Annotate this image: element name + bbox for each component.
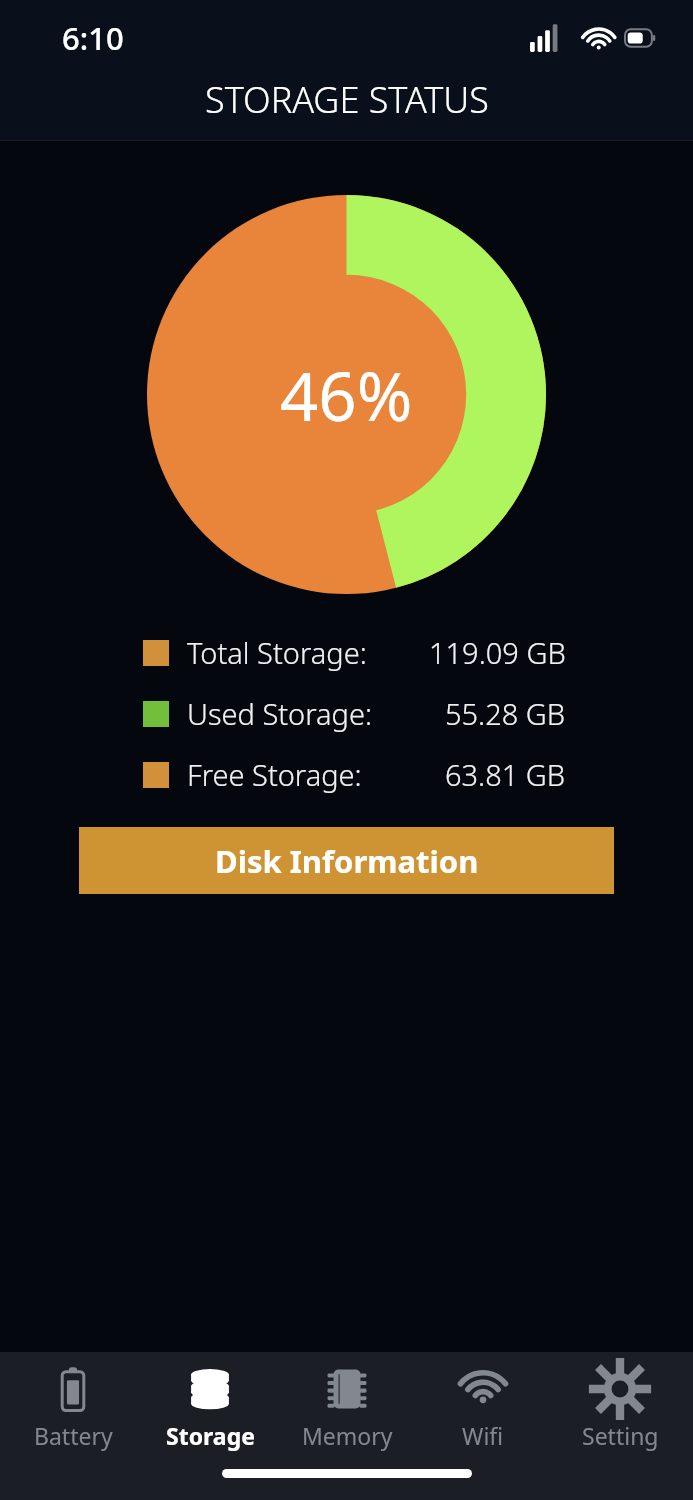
button[interactable]: Battery [9, 1358, 137, 1455]
staticText: Storage [166, 1420, 255, 1451]
button[interactable]: Setting [556, 1358, 684, 1455]
staticText: Memory [302, 1420, 393, 1451]
staticText: Total Storage: [187, 633, 367, 672]
staticText: 46% [280, 349, 413, 440]
button[interactable]: Memory [283, 1358, 411, 1455]
staticText: 55.28 GB [445, 694, 566, 733]
button[interactable]: Disk Information [79, 827, 614, 894]
staticText: Free Storage: [187, 755, 362, 794]
staticText: 119.09 GB [429, 633, 566, 672]
staticText: Disk Information [215, 840, 479, 882]
staticText: Battery [34, 1420, 113, 1451]
staticText: Used Storage: [187, 694, 373, 733]
button[interactable]: Wifi [419, 1358, 547, 1455]
staticText: Wifi [462, 1420, 504, 1451]
staticText: 6:10 [62, 17, 124, 59]
button[interactable]: Storage [146, 1358, 274, 1455]
staticText: STORAGE STATUS [205, 75, 489, 124]
staticText: Setting [582, 1420, 659, 1451]
staticText: 63.81 GB [445, 755, 566, 794]
